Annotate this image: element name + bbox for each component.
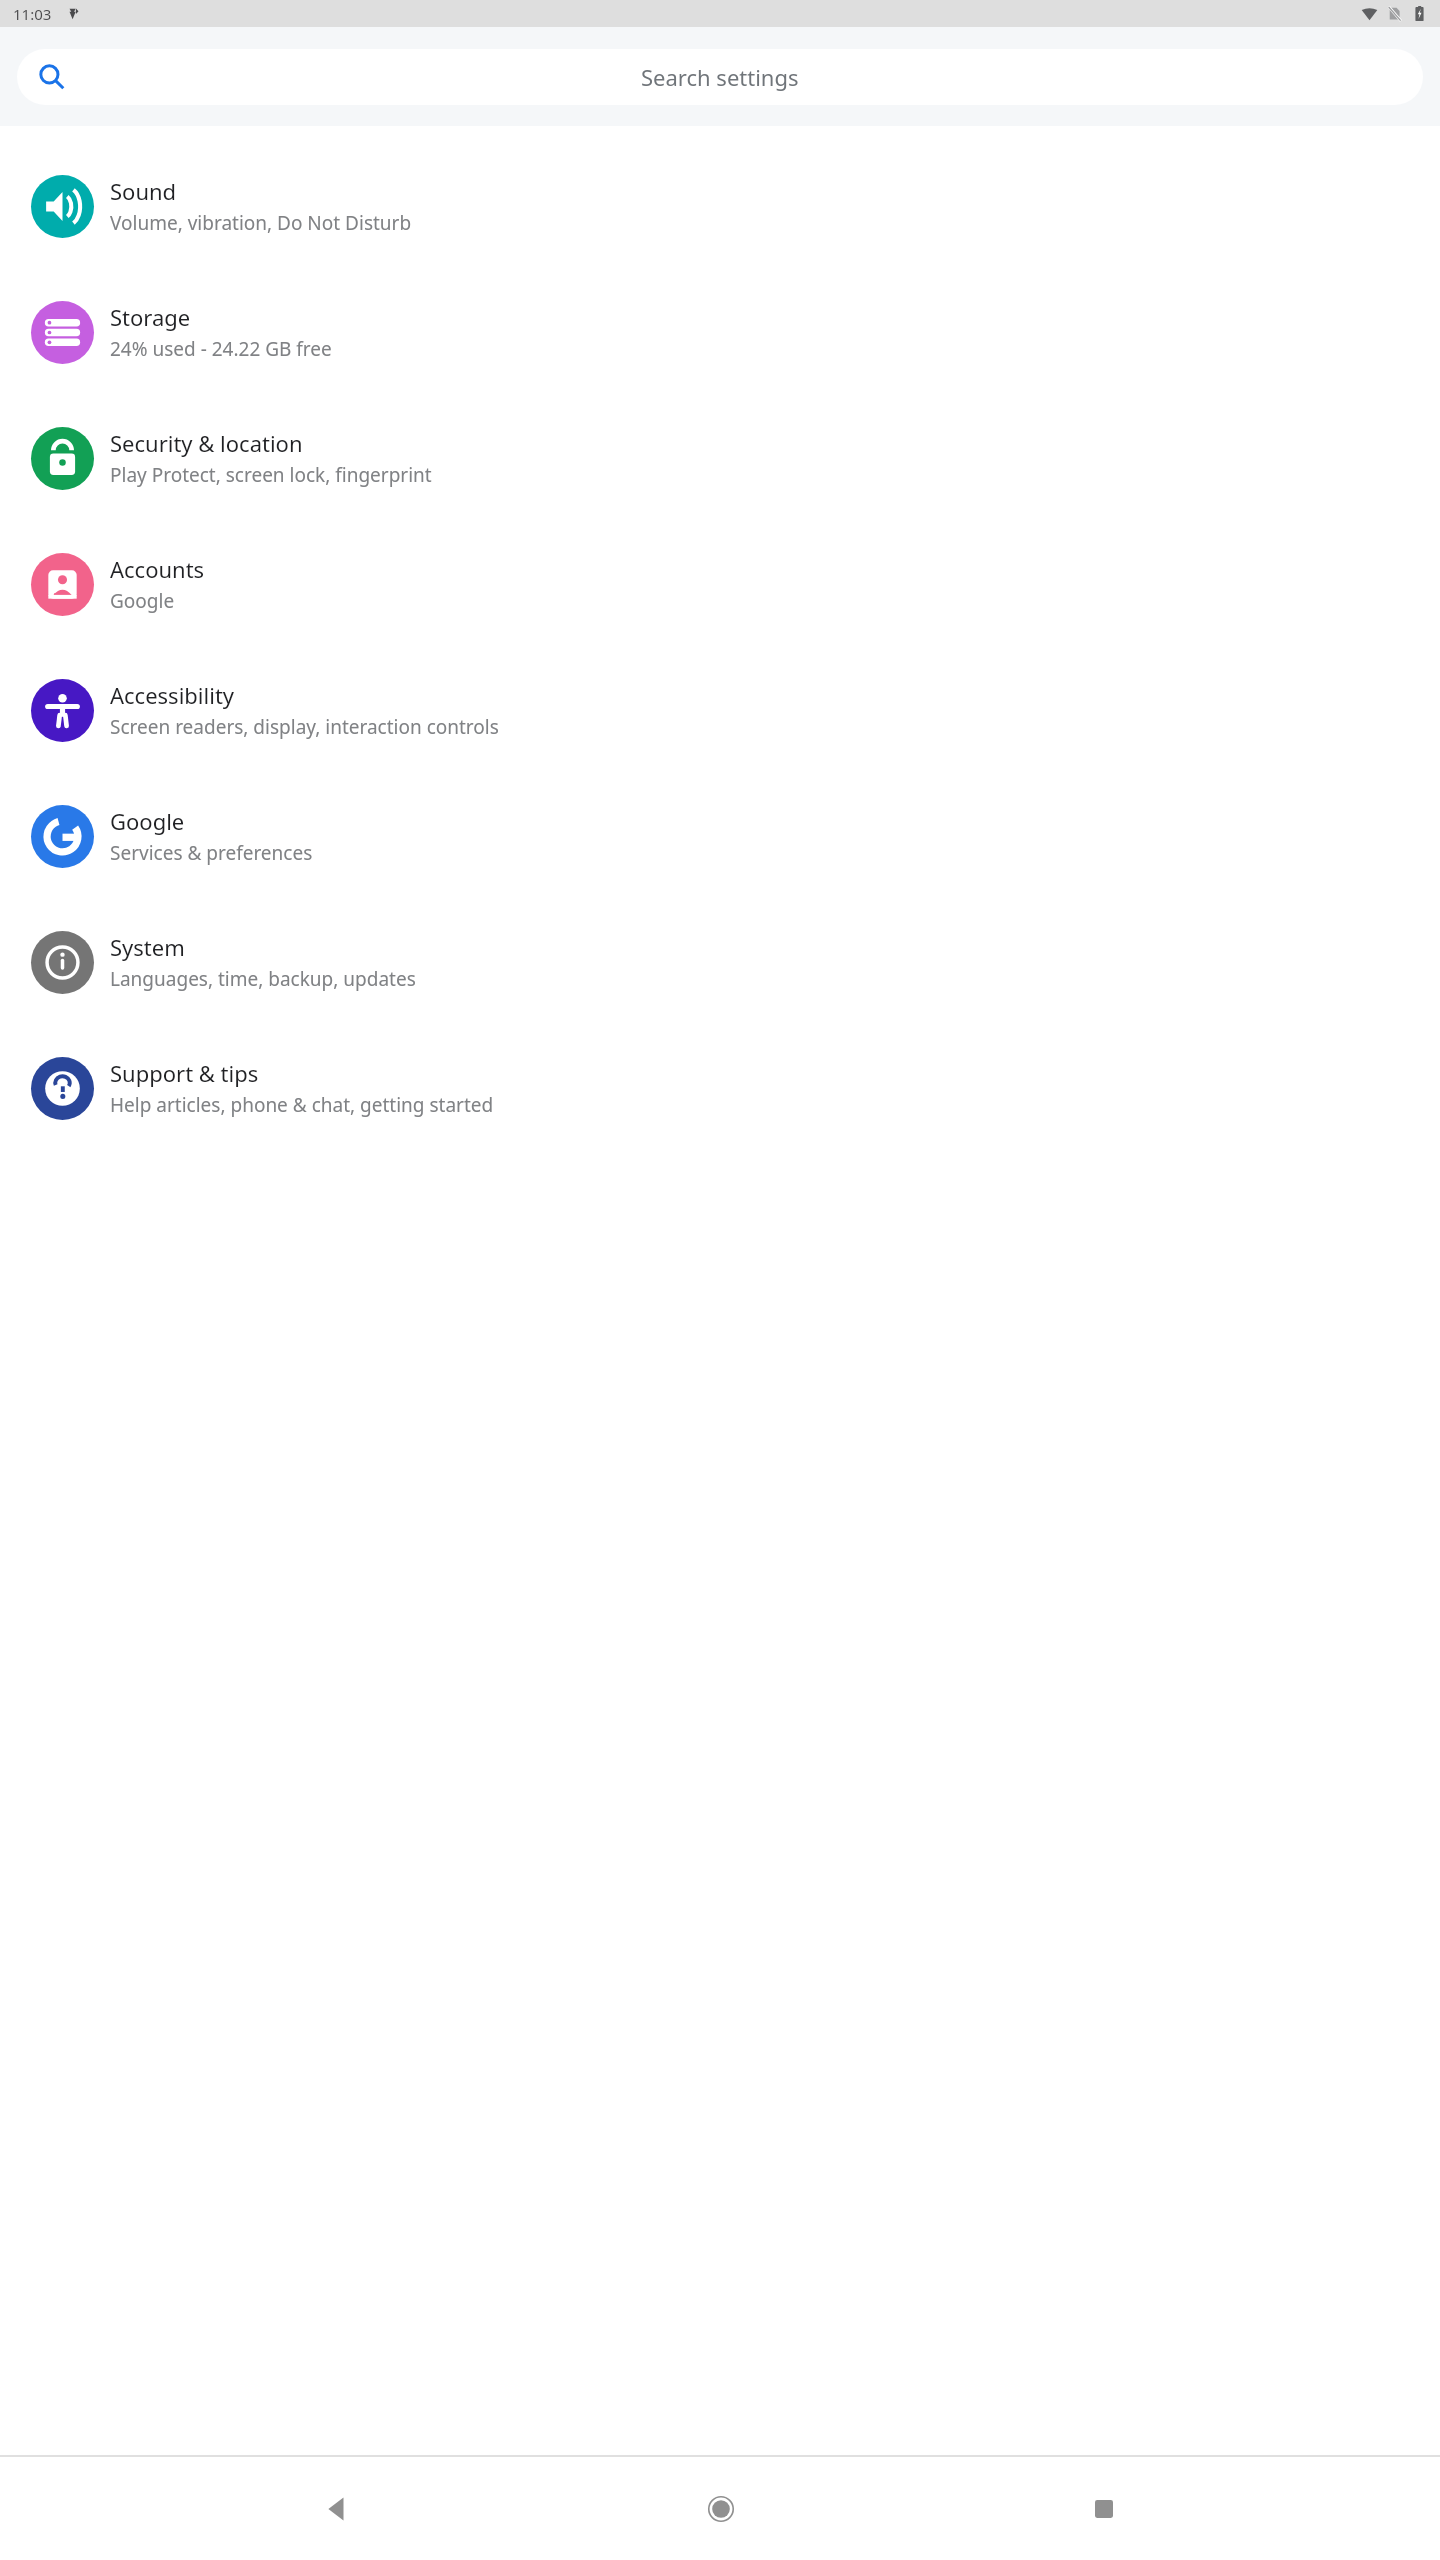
- staticText: Accessibility: [110, 680, 235, 710]
- staticText: Services & preferences: [110, 840, 313, 866]
- staticText: Search settings: [641, 62, 799, 92]
- staticText: Languages, time, backup, updates: [110, 966, 416, 992]
- button[interactable]: Back: [289, 2461, 384, 2556]
- staticText: 24% used - 24.22 GB free: [110, 336, 332, 362]
- button[interactable]: Search settings: [17, 49, 1423, 105]
- button[interactable]: Google: [0, 773, 1440, 899]
- staticText: Sound: [110, 176, 177, 206]
- staticText: Support & tips: [110, 1058, 259, 1088]
- staticText: Play Protect, screen lock, fingerprint: [110, 462, 432, 488]
- button[interactable]: System: [0, 899, 1440, 1025]
- button[interactable]: Accessibility: [0, 647, 1440, 773]
- button[interactable]: Storage: [0, 269, 1440, 395]
- staticText: Security & location: [110, 428, 303, 458]
- button[interactable]: Security & location: [0, 395, 1440, 521]
- staticText: Accounts: [110, 554, 205, 584]
- staticText: Google: [110, 806, 185, 836]
- button[interactable]: Sound: [0, 143, 1440, 269]
- staticText: 11:03: [13, 4, 52, 24]
- staticText: Volume, vibration, Do Not Disturb: [110, 210, 412, 236]
- staticText: Storage: [110, 302, 191, 332]
- staticText: Google: [110, 588, 175, 614]
- button[interactable]: Accounts: [0, 521, 1440, 647]
- button[interactable]: Support & tips: [0, 1025, 1440, 1151]
- staticText: Screen readers, display, interaction con…: [110, 714, 499, 740]
- staticText: Help articles, phone & chat, getting sta…: [110, 1092, 494, 1118]
- button[interactable]: Home: [673, 2461, 768, 2556]
- button[interactable]: Recent apps: [1056, 2461, 1151, 2556]
- staticText: System: [110, 932, 185, 962]
